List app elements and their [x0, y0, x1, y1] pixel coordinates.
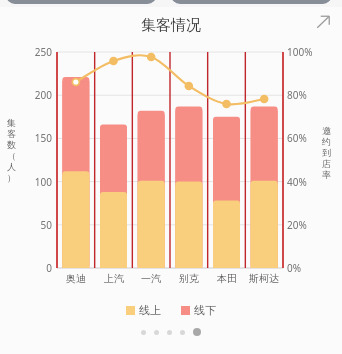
staticText: 100% [287, 45, 329, 59]
staticText: 250 [22, 45, 52, 59]
staticText: 斯柯达 [241, 272, 287, 285]
button[interactable]: Page 2 [154, 330, 159, 335]
staticText: 率 [322, 169, 331, 180]
staticText: 150 [22, 131, 52, 145]
staticText: 80% [287, 88, 329, 102]
staticText: 集 [7, 117, 16, 128]
button[interactable]: 线上 [122, 301, 165, 319]
staticText: 本田 [204, 272, 250, 285]
staticText: 0 [22, 261, 52, 275]
staticText: 奥迪 [53, 272, 99, 285]
staticText: 一汽 [128, 272, 174, 285]
staticText: 别克 [166, 272, 212, 285]
staticText: 邀 [322, 125, 331, 136]
staticText: 集客情况 [0, 16, 342, 35]
button[interactable]: Page 4 [180, 330, 185, 335]
staticText: （ [7, 150, 16, 161]
staticText: 60% [287, 131, 329, 145]
button[interactable]: Expand chart [311, 10, 335, 34]
button[interactable]: Page 3 [167, 330, 172, 335]
staticText: 40% [287, 175, 329, 189]
staticText: 200 [22, 88, 52, 102]
button[interactable]: 线下 [177, 301, 220, 319]
staticText: 店 [322, 158, 331, 169]
staticText: 100 [22, 175, 52, 189]
staticText: ） [7, 172, 16, 183]
button[interactable]: Page 1 [141, 330, 146, 335]
staticText: 客 [7, 128, 16, 139]
staticText: 线上 [139, 303, 161, 317]
staticText: 50 [22, 218, 52, 232]
button[interactable]: Page 5 [193, 328, 201, 336]
staticText: 数 [7, 139, 16, 150]
staticText: 人 [7, 161, 16, 172]
staticText: 线下 [194, 303, 216, 317]
staticText: 20% [287, 218, 329, 232]
staticText: 到 [322, 147, 331, 158]
staticText: 约 [322, 136, 331, 147]
staticText: 上汽 [91, 272, 137, 285]
staticText: 0% [287, 261, 329, 275]
